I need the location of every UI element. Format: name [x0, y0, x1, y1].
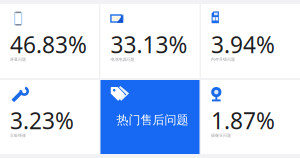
button[interactable]: 1.87% — [201, 80, 300, 154]
button[interactable]: 3.94% — [201, 4, 300, 78]
staticText: 内存升级问题 — [211, 57, 235, 62]
button[interactable]: 热门售后问题 — [100, 80, 199, 154]
button[interactable]: 33.13% — [100, 4, 199, 78]
staticText: 3.23% — [10, 105, 74, 135]
staticText: 3.94% — [211, 29, 275, 59]
staticText: 主板维修 — [10, 133, 26, 138]
staticText: 电池电源问题 — [110, 57, 134, 62]
staticText: 46.83% — [10, 29, 87, 59]
staticText: 1.87% — [211, 105, 275, 135]
staticText: 33.13% — [110, 29, 187, 59]
staticText: 屏幕问题 — [10, 57, 26, 62]
staticText: 摄像头问题 — [211, 133, 231, 138]
button[interactable]: 46.83% — [0, 4, 99, 78]
button[interactable]: 3.23% — [0, 80, 99, 154]
staticText: 热门售后问题 — [116, 113, 188, 127]
